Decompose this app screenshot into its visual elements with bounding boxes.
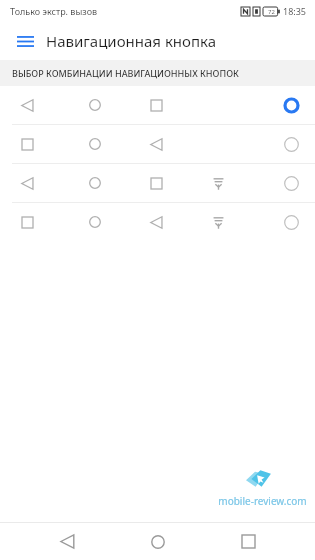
staticText: 72 bbox=[268, 8, 275, 16]
button[interactable]: Selected bbox=[0, 86, 315, 124]
button[interactable]: Back bbox=[43, 523, 91, 560]
staticText: 18:35 bbox=[283, 5, 307, 17]
button[interactable]: Home bbox=[134, 523, 182, 560]
button[interactable]: Not selected bbox=[0, 203, 315, 241]
staticText: mobile-review.com bbox=[218, 494, 307, 508]
button[interactable]: Recent apps bbox=[224, 523, 272, 560]
button[interactable]: Not selected bbox=[282, 174, 300, 192]
button[interactable]: Not selected bbox=[282, 213, 300, 231]
staticText: ВЫБОР КОМБИНАЦИИ НАВИГАЦИОННЫХ КНОПОК bbox=[12, 67, 239, 79]
staticText: Только экстр. вызов bbox=[10, 5, 98, 17]
button[interactable]: Not selected bbox=[0, 125, 315, 163]
button[interactable]: Not selected bbox=[282, 135, 300, 153]
button[interactable]: Menu bbox=[10, 26, 40, 56]
button[interactable]: Selected bbox=[282, 96, 300, 114]
staticText: Навигационная кнопка bbox=[46, 31, 217, 51]
button[interactable]: Not selected bbox=[0, 164, 315, 202]
